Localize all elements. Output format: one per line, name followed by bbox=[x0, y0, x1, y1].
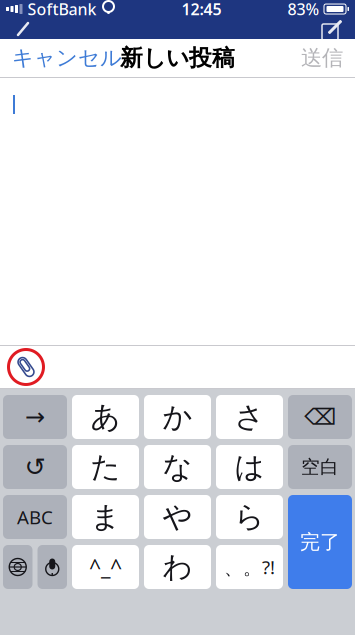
button[interactable]: Attach file bbox=[0, 346, 52, 388]
staticText: ABC bbox=[17, 505, 53, 529]
staticText: ま bbox=[90, 499, 120, 535]
button[interactable]: た bbox=[72, 445, 139, 489]
staticText: な bbox=[162, 449, 192, 485]
button[interactable]: は bbox=[216, 445, 283, 489]
button[interactable]: Compose bbox=[313, 19, 347, 39]
staticText: 新しい投稿 bbox=[120, 44, 235, 72]
staticText: → bbox=[25, 403, 45, 431]
button[interactable]: ^_^ bbox=[72, 545, 139, 589]
button[interactable]: Next keyboard bbox=[3, 545, 32, 589]
button[interactable]: → bbox=[3, 395, 67, 439]
button[interactable]: や bbox=[144, 495, 211, 539]
staticText: キャンセル bbox=[12, 45, 122, 71]
staticText: ^_^ bbox=[89, 553, 122, 581]
button[interactable]: 送信 bbox=[289, 37, 355, 79]
staticText: ⌫ bbox=[304, 404, 336, 430]
staticText: か bbox=[162, 399, 192, 435]
staticText: ↺ bbox=[24, 453, 45, 481]
staticText: 12:45 bbox=[181, 0, 221, 20]
button[interactable]: Back bbox=[8, 19, 38, 39]
staticText: ら bbox=[234, 499, 264, 535]
button[interactable]: か bbox=[144, 395, 211, 439]
button[interactable]: ABC bbox=[3, 495, 67, 539]
staticText: SoftBank bbox=[27, 0, 96, 20]
button[interactable]: ま bbox=[72, 495, 139, 539]
staticText: 、。?! bbox=[224, 555, 275, 579]
staticText: は bbox=[234, 449, 264, 485]
button[interactable]: ⌫ bbox=[288, 395, 352, 439]
button[interactable]: 、。?! bbox=[216, 545, 283, 589]
button[interactable]: Dictation bbox=[37, 545, 67, 589]
button[interactable]: わ bbox=[144, 545, 211, 589]
staticText: 完了 bbox=[300, 530, 340, 554]
button[interactable]: ↺ bbox=[3, 445, 67, 489]
staticText: さ bbox=[234, 399, 264, 435]
staticText: た bbox=[90, 449, 120, 485]
staticText: 空白 bbox=[301, 455, 339, 478]
button[interactable]: さ bbox=[216, 395, 283, 439]
staticText: あ bbox=[90, 399, 120, 435]
staticText: わ bbox=[162, 549, 192, 585]
staticText: や bbox=[162, 499, 192, 535]
button[interactable]: あ bbox=[72, 395, 139, 439]
button[interactable]: 空白 bbox=[288, 445, 352, 489]
button[interactable]: キャンセル bbox=[0, 37, 134, 79]
button[interactable]: ら bbox=[216, 495, 283, 539]
button[interactable]: 完了 bbox=[288, 495, 352, 589]
button[interactable]: な bbox=[144, 445, 211, 489]
staticText: 83% bbox=[287, 0, 319, 20]
staticText: 送信 bbox=[301, 45, 343, 71]
